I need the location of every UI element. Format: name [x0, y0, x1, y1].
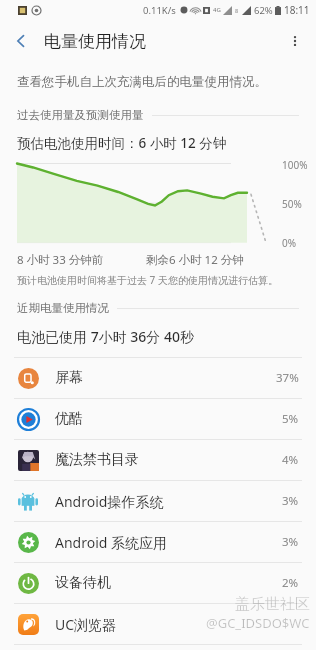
- staticText: 4G: [213, 6, 221, 14]
- button[interactable]: Back: [0, 20, 42, 62]
- staticText: 62%: [254, 4, 273, 17]
- staticText: 预计电池使用时间将基于过去 7 天您的使用情况进行估算。: [17, 273, 278, 287]
- button[interactable]: UC浏览器: [0, 604, 316, 644]
- staticText: 3%: [282, 534, 299, 550]
- staticText: 8 小时 33 分钟前: [17, 252, 104, 268]
- staticText: 设备待机: [55, 574, 111, 592]
- staticText: Android 系统应用: [55, 533, 168, 552]
- staticText: 18:11: [284, 3, 310, 17]
- staticText: 查看您手机自上次充满电后的电量使用情况。: [17, 74, 267, 90]
- button[interactable]: 屏幕: [0, 358, 316, 398]
- staticText: 电池已使用 7小时 36分 40秒: [17, 327, 194, 346]
- staticText: 0.11K/s: [143, 4, 176, 17]
- button[interactable]: Android 系统应用: [0, 522, 316, 562]
- staticText: 剩余6 小时 12 分钟: [146, 252, 244, 268]
- staticText: 近期电量使用情况: [17, 301, 109, 315]
- staticText: 8: [235, 7, 239, 14]
- staticText: Android操作系统: [55, 492, 164, 511]
- staticText: 优酷: [55, 410, 83, 428]
- staticText: 0%: [282, 236, 297, 250]
- button[interactable]: More options: [274, 20, 316, 62]
- staticText: 电量使用情况: [44, 31, 146, 52]
- staticText: 屏幕: [55, 369, 83, 387]
- staticText: 预估电池使用时间：6 小时 12 分钟: [17, 134, 227, 152]
- staticText: 37%: [276, 370, 299, 386]
- staticText: 100%: [282, 158, 308, 172]
- staticText: @GC_IDSDO$WC: [206, 614, 310, 632]
- staticText: 4%: [282, 452, 299, 468]
- button[interactable]: 设备待机: [0, 563, 316, 603]
- staticText: 5%: [282, 411, 299, 427]
- staticText: 盖乐世社区: [235, 595, 310, 614]
- button[interactable]: 优酷: [0, 399, 316, 439]
- staticText: 3%: [282, 493, 299, 509]
- staticText: 魔法禁书目录: [55, 451, 139, 469]
- button[interactable]: Android操作系统: [0, 481, 316, 521]
- button[interactable]: 魔法禁书目录: [0, 440, 316, 480]
- staticText: 过去使用量及预测使用量: [17, 108, 144, 122]
- staticText: UC浏览器: [55, 615, 117, 634]
- staticText: 2%: [282, 575, 299, 591]
- staticText: 50%: [282, 197, 302, 211]
